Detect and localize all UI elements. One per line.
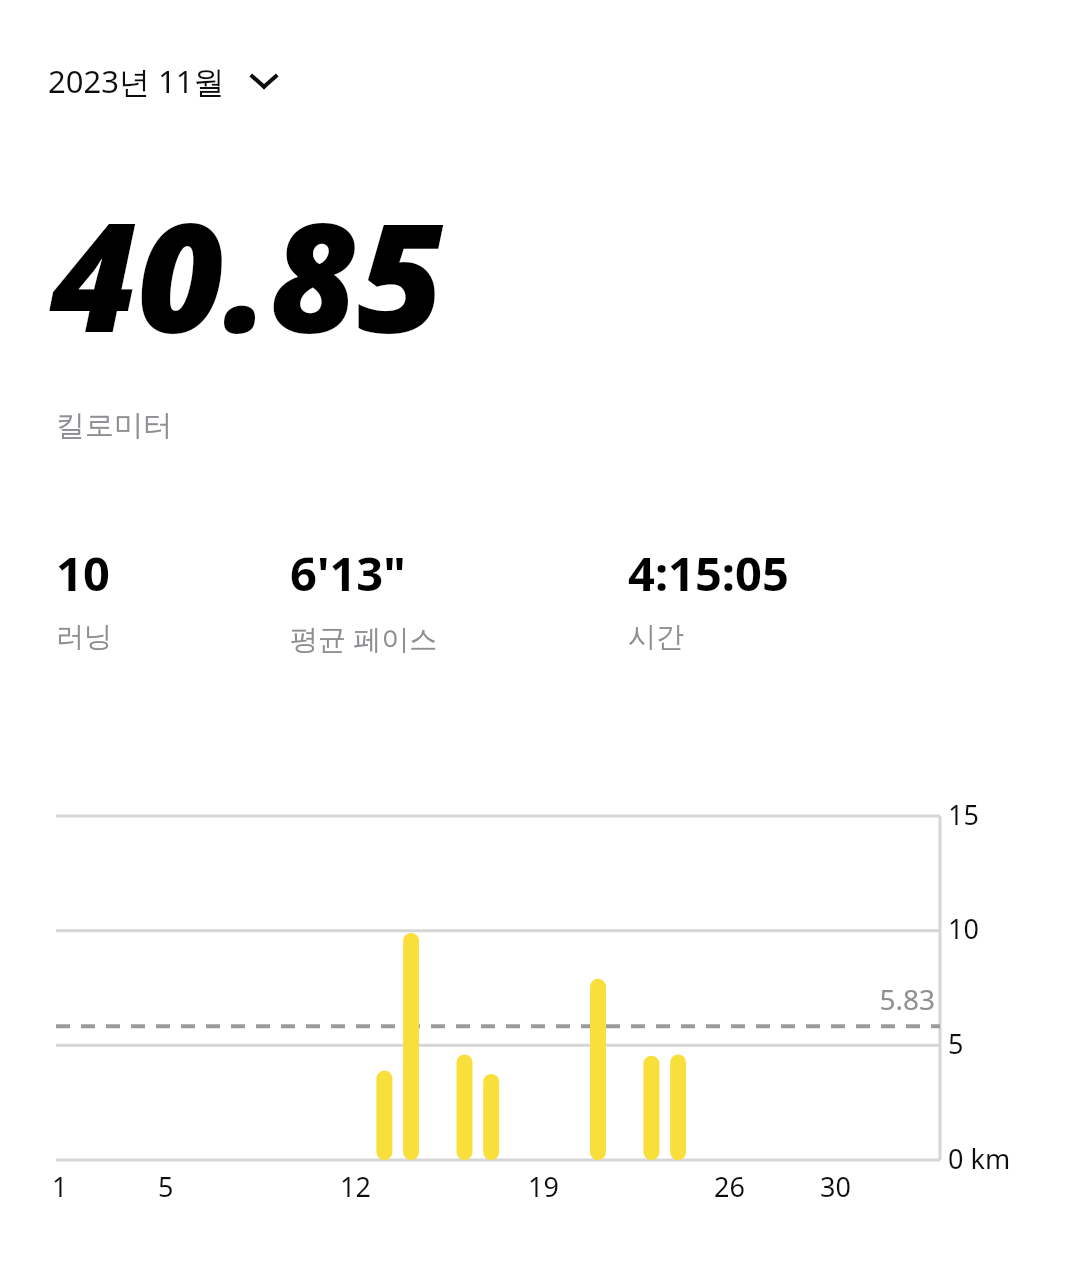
staticText: 30 [820,1168,851,1205]
button[interactable]: 2023년 11월 [48,60,285,102]
button[interactable]: 4:15:05 [628,541,928,654]
button[interactable]: 6'13" [290,541,610,657]
staticText: 5 [948,1025,964,1062]
staticText: 시간 [628,619,684,654]
staticText: 1 [52,1168,68,1205]
staticText: 0 km [948,1140,1011,1177]
staticText: 러닝 [56,619,112,654]
staticText: 5.83 [790,980,935,1284]
staticText: 4:15:05 [628,541,789,605]
staticText: 10 [948,910,979,947]
staticText: 26 [714,1168,745,1205]
staticText: 40.85 [50,172,444,376]
other: Select month [243,60,285,102]
button[interactable]: 10 [56,541,276,654]
staticText: 12 [340,1168,371,1205]
staticText: 6'13" [290,541,406,605]
staticText: 10 [56,541,110,605]
staticText: 킬로미터 [56,407,172,444]
staticText: 2023년 11월 [48,60,225,102]
staticText: 15 [948,796,979,833]
staticText: 5 [158,1168,174,1205]
staticText: 19 [528,1168,559,1205]
staticText: 평균 페이스 [290,619,438,657]
